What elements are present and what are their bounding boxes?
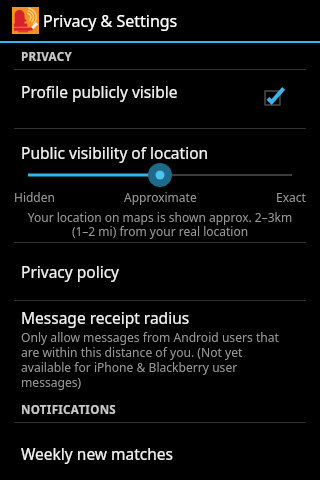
button[interactable]: Message receipt radius — [0, 307, 320, 389]
staticText: Your location on maps is shown approx. 2… — [22, 209, 298, 240]
staticText: Public visibility of location — [21, 142, 209, 163]
staticText: Hidden — [14, 189, 55, 205]
staticText: Privacy policy — [21, 261, 119, 282]
staticText: NOTIFICATIONS — [21, 402, 117, 418]
staticText: Exact — [276, 189, 306, 205]
staticText: Approximate — [124, 189, 197, 205]
button[interactable]: Public visibility of location — [0, 129, 320, 242]
button[interactable]: Privacy policy — [0, 243, 320, 300]
button[interactable]: Profile publicly visible — [0, 62, 320, 120]
staticText: Profile publicly visible — [21, 81, 263, 102]
button[interactable]: Privacy & Settings — [0, 0, 320, 41]
staticText: Weekly new matches — [21, 443, 173, 464]
staticText: PRIVACY — [21, 49, 72, 65]
staticText: Privacy & Settings — [43, 10, 178, 32]
staticText: Only allow messages from Android users t… — [21, 329, 285, 390]
button[interactable]: Weekly new matches — [0, 425, 320, 480]
staticText: Message receipt radius — [21, 307, 190, 328]
